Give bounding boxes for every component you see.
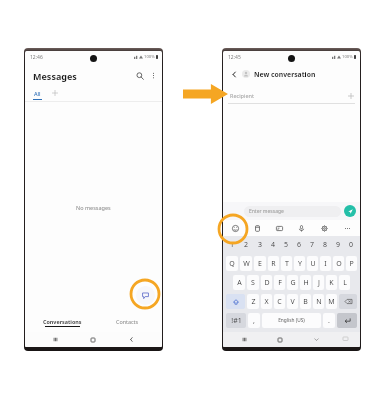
button[interactable]: Keyboard layout bbox=[334, 332, 356, 347]
button[interactable]: 7 bbox=[306, 236, 319, 254]
button[interactable]: M bbox=[326, 294, 337, 309]
staticText: Enter message bbox=[249, 208, 284, 215]
button[interactable]: R bbox=[268, 256, 279, 271]
button[interactable]: I bbox=[320, 256, 331, 271]
staticText: J bbox=[318, 278, 320, 288]
button[interactable]: All bbox=[33, 90, 42, 100]
staticText: 1 bbox=[230, 240, 235, 250]
button[interactable]: Contacts bbox=[93, 316, 162, 328]
button[interactable]: !#1 bbox=[226, 313, 246, 328]
staticText: English (US) bbox=[278, 317, 305, 324]
button[interactable]: More options bbox=[147, 69, 159, 81]
button[interactable]: Voice bbox=[290, 220, 313, 237]
button[interactable]: Q bbox=[226, 256, 238, 271]
staticText: W bbox=[243, 259, 250, 269]
staticText: M bbox=[328, 297, 335, 307]
button[interactable] bbox=[337, 313, 357, 328]
button[interactable]: Home bbox=[262, 332, 298, 347]
staticText: 4 bbox=[271, 240, 276, 250]
button[interactable]: U bbox=[307, 256, 318, 271]
button[interactable]: D bbox=[261, 275, 272, 290]
button[interactable]: Conversations bbox=[25, 316, 93, 328]
button[interactable]: F bbox=[274, 275, 285, 290]
staticText: A bbox=[237, 278, 242, 288]
button[interactable]: 4 bbox=[267, 236, 280, 254]
staticText: Messages bbox=[33, 70, 77, 82]
staticText: 0 bbox=[349, 240, 354, 250]
button[interactable]: Recents bbox=[37, 332, 74, 347]
button[interactable]: T bbox=[281, 256, 292, 271]
button[interactable]: . bbox=[323, 313, 335, 328]
button[interactable]: Z bbox=[247, 294, 259, 309]
staticText: . bbox=[328, 316, 330, 326]
button[interactable]: Attach bbox=[246, 220, 268, 237]
staticText: All bbox=[34, 90, 41, 97]
button[interactable]: 0 bbox=[345, 236, 358, 254]
staticText: Recipient bbox=[230, 92, 254, 99]
staticText: B bbox=[303, 297, 308, 307]
button[interactable]: 8 bbox=[319, 236, 332, 254]
button[interactable]: E bbox=[254, 256, 266, 271]
button[interactable]: 2 bbox=[239, 236, 253, 254]
button[interactable] bbox=[226, 294, 245, 309]
staticText: E bbox=[258, 259, 262, 269]
button[interactable]: Search bbox=[133, 69, 147, 83]
staticText: N bbox=[316, 297, 322, 307]
button[interactable]: G bbox=[287, 275, 298, 290]
staticText: No messages bbox=[76, 204, 111, 211]
button[interactable]: 9 bbox=[332, 236, 345, 254]
staticText: Y bbox=[298, 259, 302, 269]
button[interactable]: Back bbox=[228, 68, 240, 80]
staticText: V bbox=[290, 297, 295, 307]
button[interactable]: C bbox=[274, 294, 285, 309]
staticText: 12:46 bbox=[30, 54, 43, 61]
button[interactable]: English (US) bbox=[262, 313, 321, 328]
button[interactable]: Send bbox=[344, 205, 356, 217]
button[interactable]: 6 bbox=[293, 236, 306, 254]
button[interactable]: P bbox=[346, 256, 357, 271]
button[interactable]: Settings bbox=[313, 220, 336, 237]
button[interactable]: Hide keyboard bbox=[298, 332, 334, 347]
button[interactable]: Enter message bbox=[244, 206, 341, 217]
staticText: X bbox=[264, 297, 269, 307]
button[interactable]: L bbox=[339, 275, 350, 290]
staticText: 6 bbox=[297, 240, 302, 250]
staticText: U bbox=[310, 259, 316, 269]
button[interactable]: Emoji bbox=[224, 220, 246, 237]
button[interactable]: V bbox=[287, 294, 298, 309]
staticText: S bbox=[251, 278, 255, 288]
button[interactable]: New conversation bbox=[136, 286, 155, 305]
button[interactable]: N bbox=[313, 294, 324, 309]
button[interactable]: Add recipient bbox=[345, 90, 356, 101]
staticText: 8 bbox=[323, 240, 328, 250]
staticText: T bbox=[285, 259, 289, 269]
button[interactable]: H bbox=[300, 275, 311, 290]
button[interactable]: 5 bbox=[280, 236, 293, 254]
button[interactable]: S bbox=[247, 275, 259, 290]
staticText: G bbox=[290, 278, 296, 288]
button[interactable]: 1 bbox=[225, 236, 239, 254]
button[interactable]: Recents bbox=[227, 332, 262, 347]
staticText: !#1 bbox=[231, 316, 242, 326]
button[interactable]: Home bbox=[74, 332, 112, 347]
staticText: Q bbox=[229, 259, 235, 269]
button[interactable] bbox=[339, 294, 357, 309]
staticText: R bbox=[271, 259, 276, 269]
button[interactable]: More bbox=[336, 220, 359, 237]
staticText: H bbox=[303, 278, 309, 288]
button[interactable]: Back bbox=[112, 332, 150, 347]
button[interactable]: Gallery bbox=[268, 220, 290, 237]
button[interactable]: K bbox=[326, 275, 337, 290]
staticText: 100% bbox=[144, 54, 155, 60]
button[interactable]: 3 bbox=[253, 236, 267, 254]
button[interactable]: J bbox=[313, 275, 324, 290]
button[interactable]: , bbox=[248, 313, 260, 328]
button[interactable]: O bbox=[333, 256, 344, 271]
button[interactable]: Y bbox=[294, 256, 305, 271]
button[interactable]: B bbox=[300, 294, 311, 309]
button[interactable]: X bbox=[261, 294, 272, 309]
button[interactable]: A bbox=[233, 275, 245, 290]
button[interactable]: Add bbox=[49, 87, 61, 99]
button[interactable]: W bbox=[240, 256, 252, 271]
staticText: Z bbox=[251, 297, 256, 307]
